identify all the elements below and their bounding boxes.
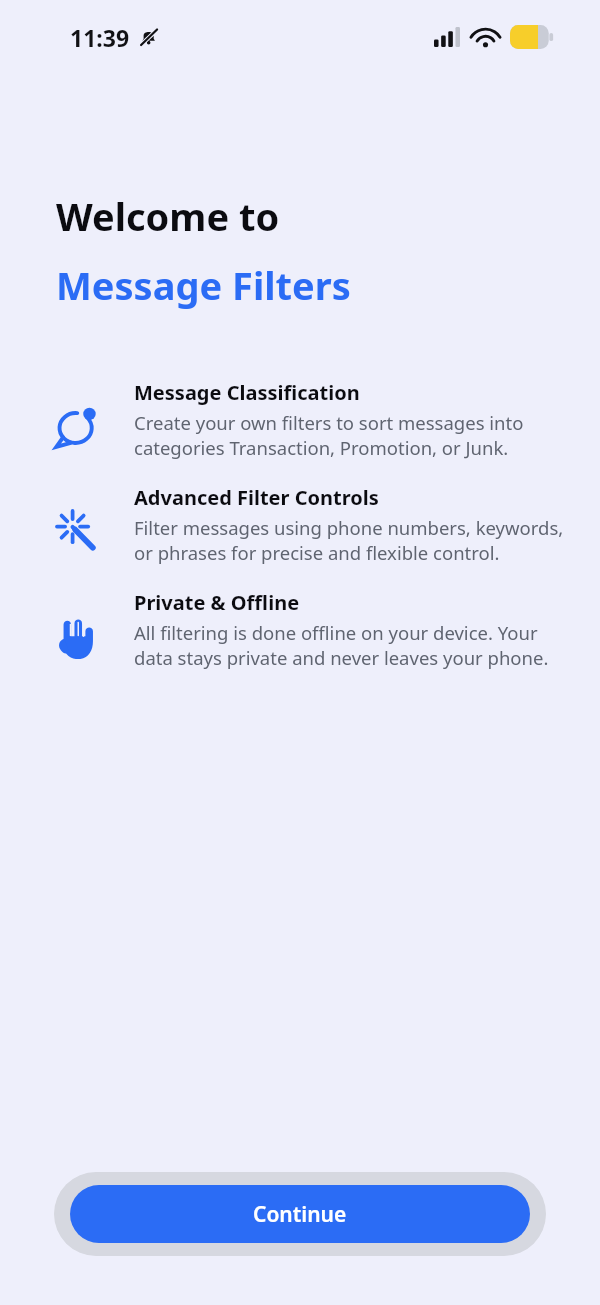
staticText: Private & Offline: [134, 589, 300, 616]
staticText: Message Classification: [134, 379, 360, 406]
staticText: Create your own filters to sort messages…: [134, 410, 524, 461]
other: Advanced filter controls: [55, 509, 99, 553]
staticText: Welcome to: [56, 190, 280, 242]
staticText: 11:39: [70, 22, 130, 53]
other: Message classification: [54, 405, 100, 451]
other: Private and offline: [56, 617, 98, 659]
button[interactable]: Continue: [70, 1185, 530, 1243]
staticText: Filter messages using phone numbers, key…: [134, 515, 564, 566]
button[interactable]: Advanced filter controls: [0, 482, 600, 566]
staticText: Continue: [253, 1200, 347, 1229]
staticText: All filtering is done offline on your de…: [134, 620, 549, 671]
staticText: Message Filters: [56, 259, 351, 311]
button[interactable]: Private and offline: [0, 587, 600, 671]
staticText: Advanced Filter Controls: [134, 484, 379, 511]
button[interactable]: Message classification: [0, 377, 600, 461]
